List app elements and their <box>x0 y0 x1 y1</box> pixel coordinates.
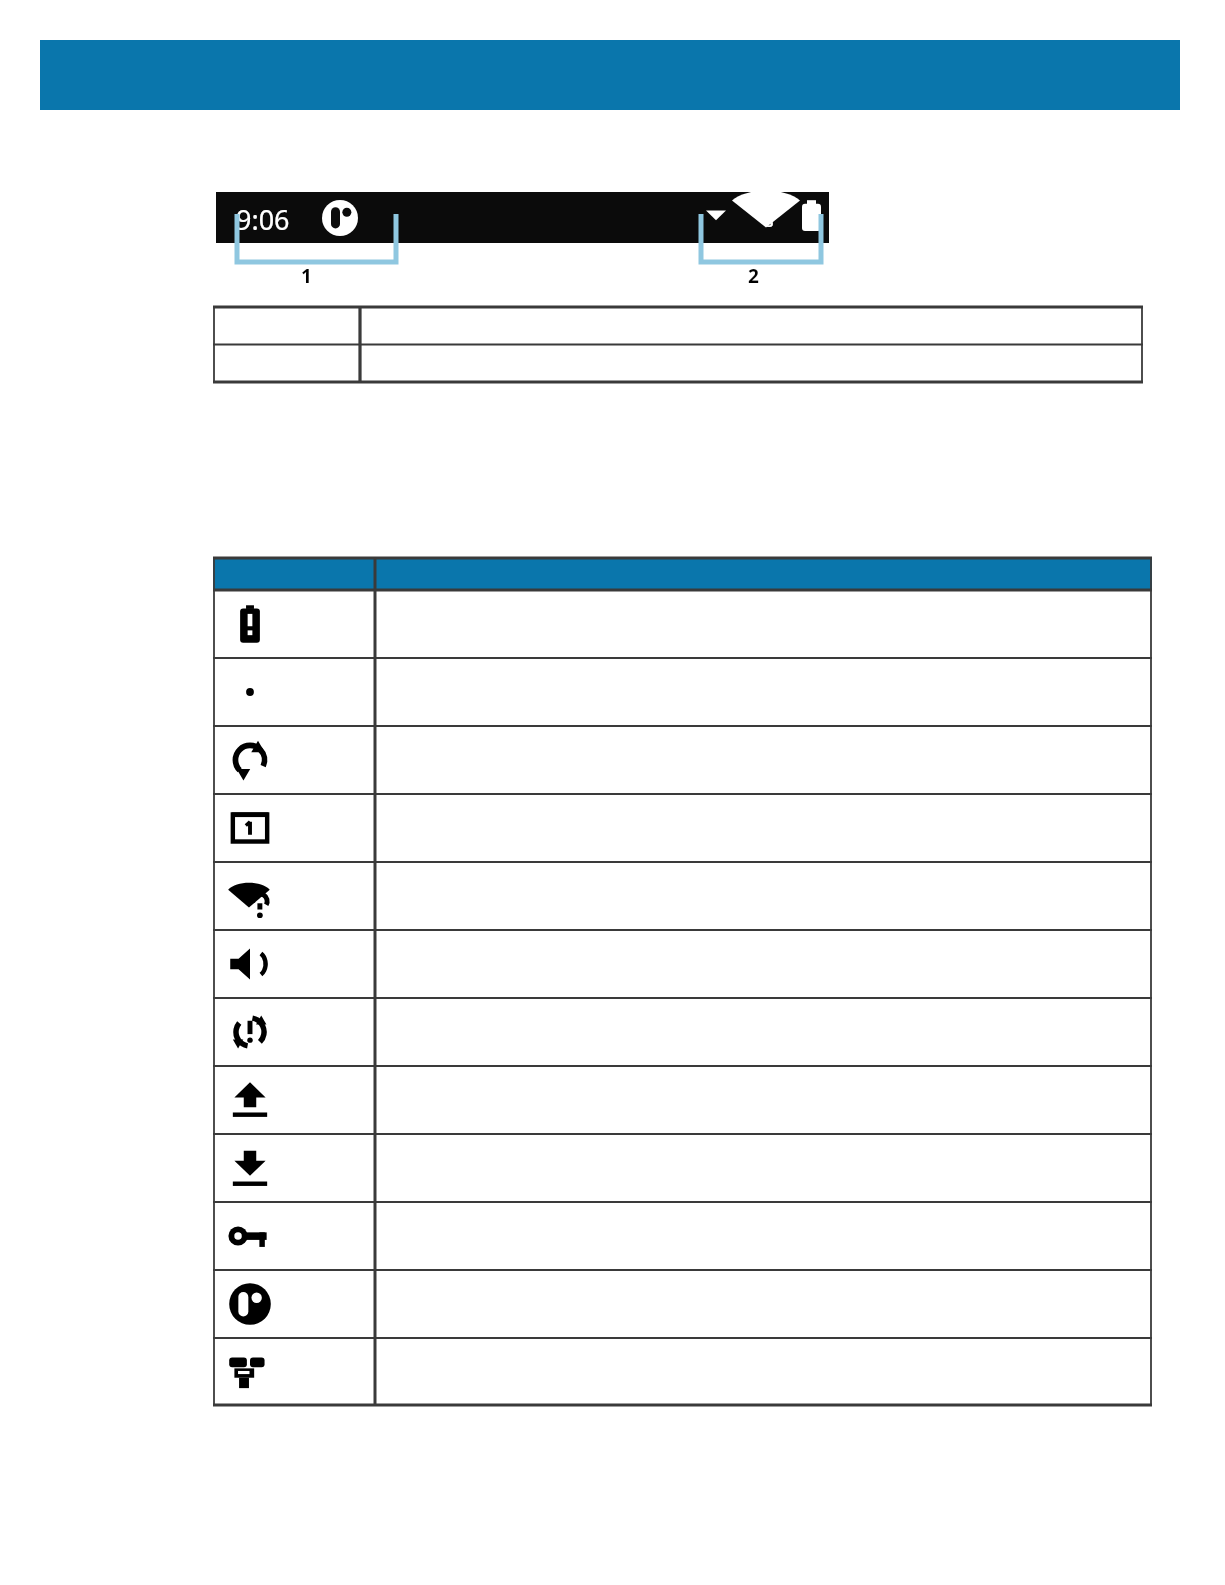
staticText: 9:06 <box>236 201 290 238</box>
staticText: 5 <box>766 213 774 231</box>
button[interactable]: Sync active <box>224 734 276 786</box>
button[interactable]: Status dot <box>224 666 276 718</box>
button[interactable]: Battery low <box>224 598 276 650</box>
button[interactable]: Sync error <box>224 1006 276 1058</box>
button[interactable]: Wi-Fi unknown network <box>224 870 276 922</box>
button[interactable]: Speaker on <box>224 938 276 990</box>
button[interactable]: DataWedge <box>224 1278 276 1330</box>
button[interactable]: Calendar event <box>224 802 276 854</box>
staticText: 1 <box>301 263 312 289</box>
button[interactable]: Scanner cradle <box>224 1346 276 1398</box>
button[interactable]: VPN key <box>224 1210 276 1262</box>
button[interactable]: Upload <box>224 1074 276 1126</box>
button[interactable]: Download <box>224 1142 276 1194</box>
staticText: 2 <box>748 263 759 289</box>
